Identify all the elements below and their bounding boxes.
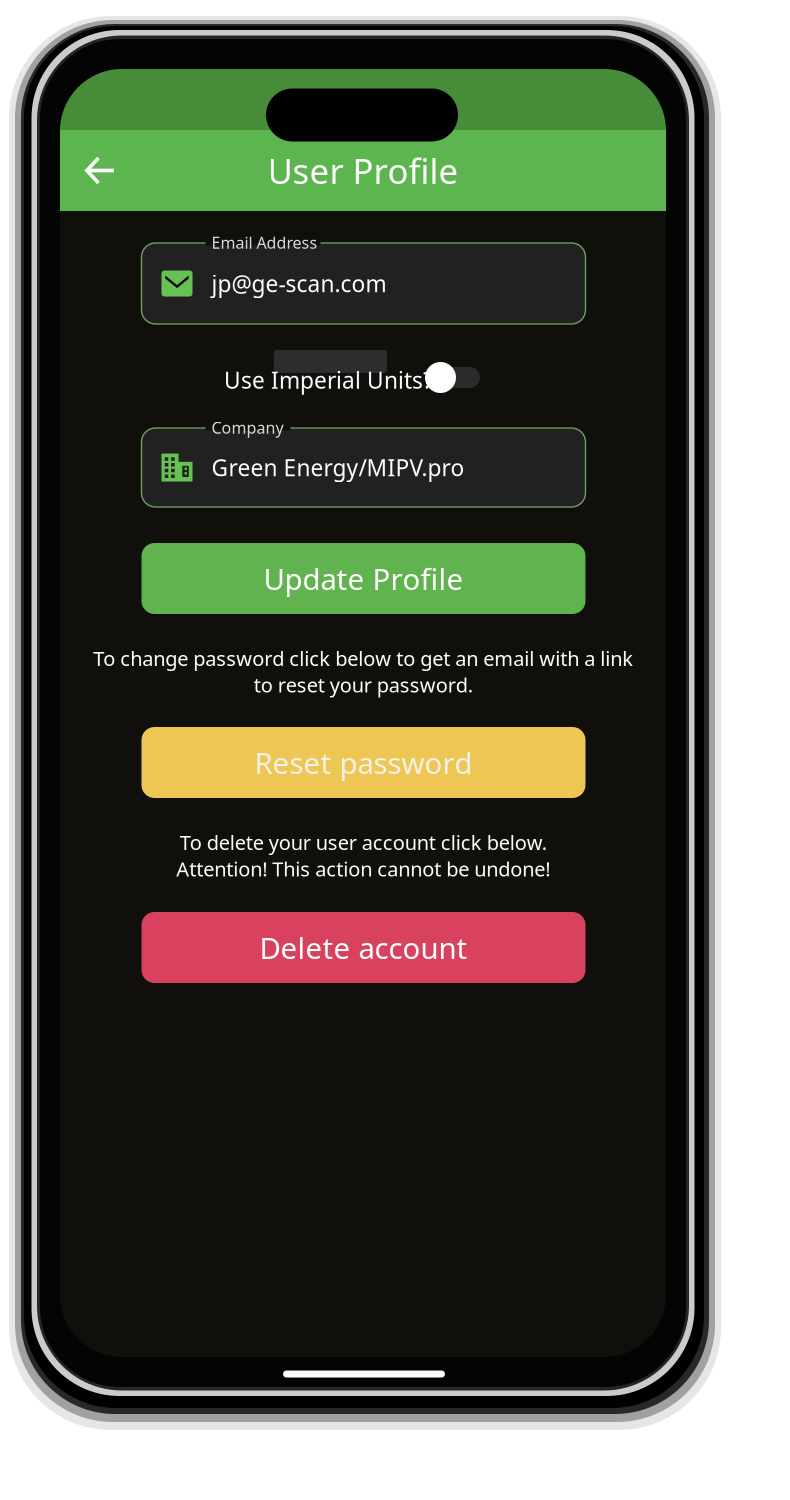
staticText: jp@ge-scan.com — [211, 268, 386, 298]
staticText: To delete your user account click below.… — [176, 829, 550, 882]
button[interactable]: Update Profile — [141, 543, 585, 614]
staticText: To change password click below to get an… — [93, 645, 633, 698]
staticText: Update Profile — [263, 559, 463, 598]
staticText: Green Energy/MIPV.pro — [211, 452, 464, 482]
staticText: User Profile — [267, 147, 458, 193]
staticText: Use Imperial Units? — [224, 365, 433, 395]
button[interactable]: Delete account — [141, 912, 585, 983]
button[interactable]: Reset password — [141, 727, 585, 798]
staticText: Email Address — [211, 232, 317, 253]
button[interactable]: Back — [74, 143, 126, 197]
staticText: Company — [211, 417, 283, 438]
button[interactable]: Use Imperial Units toggle — [425, 362, 480, 393]
staticText: Reset password — [254, 743, 472, 782]
staticText: Delete account — [259, 928, 467, 967]
